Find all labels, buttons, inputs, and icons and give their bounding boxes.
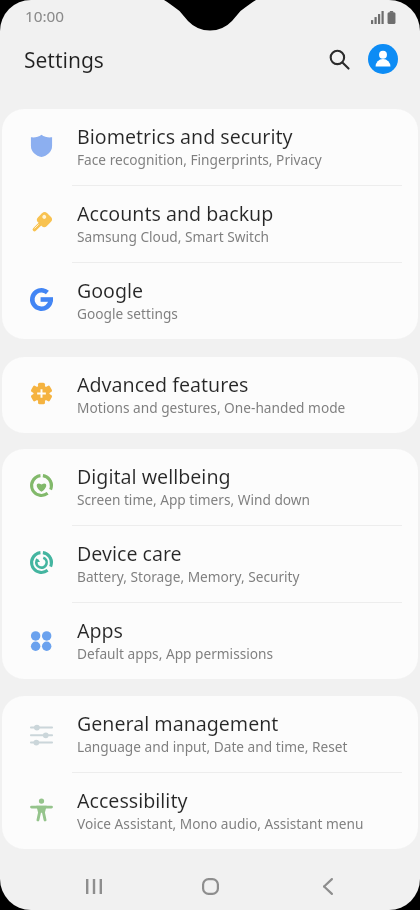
staticText: Battery, Storage, Memory, Security: [77, 567, 300, 586]
staticText: Google: [77, 277, 144, 304]
staticText: Default apps, App permissions: [77, 644, 274, 663]
staticText: Settings: [24, 46, 104, 75]
staticText: Face recognition, Fingerprints, Privacy: [77, 150, 322, 169]
staticText: Device care: [77, 540, 182, 567]
button[interactable]: Recents: [35, 862, 152, 910]
staticText: Screen time, App timers, Wind down: [77, 490, 311, 509]
button[interactable]: Device care: [2, 526, 418, 602]
staticText: Digital wellbeing: [77, 463, 231, 490]
staticText: Accounts and backup: [77, 200, 274, 227]
staticText: Accessibility: [77, 787, 188, 814]
button[interactable]: Back: [269, 862, 386, 910]
button[interactable]: Accessibility: [2, 773, 418, 849]
button[interactable]: General management: [2, 696, 418, 772]
button[interactable]: Home: [152, 862, 269, 910]
staticText: 10:00: [25, 6, 65, 27]
staticText: Apps: [77, 617, 124, 644]
staticText: Biometrics and security: [77, 123, 293, 150]
button[interactable]: Biometrics and security: [2, 109, 418, 185]
button[interactable]: Google: [2, 263, 418, 339]
button[interactable]: Apps: [2, 603, 418, 679]
button[interactable]: Search: [319, 39, 359, 79]
staticText: Samsung Cloud, Smart Switch: [77, 227, 269, 246]
button[interactable]: Accounts and backup: [2, 186, 418, 262]
staticText: Voice Assistant, Mono audio, Assistant m…: [77, 814, 364, 833]
button[interactable]: Advanced features: [2, 357, 418, 433]
button[interactable]: Digital wellbeing: [2, 449, 418, 525]
button[interactable]: Account: [368, 44, 398, 74]
staticText: Motions and gestures, One-handed mode: [77, 398, 346, 417]
staticText: Google settings: [77, 304, 178, 323]
staticText: General management: [77, 710, 279, 737]
staticText: Advanced features: [77, 371, 249, 398]
staticText: Language and input, Date and time, Reset: [77, 737, 348, 756]
